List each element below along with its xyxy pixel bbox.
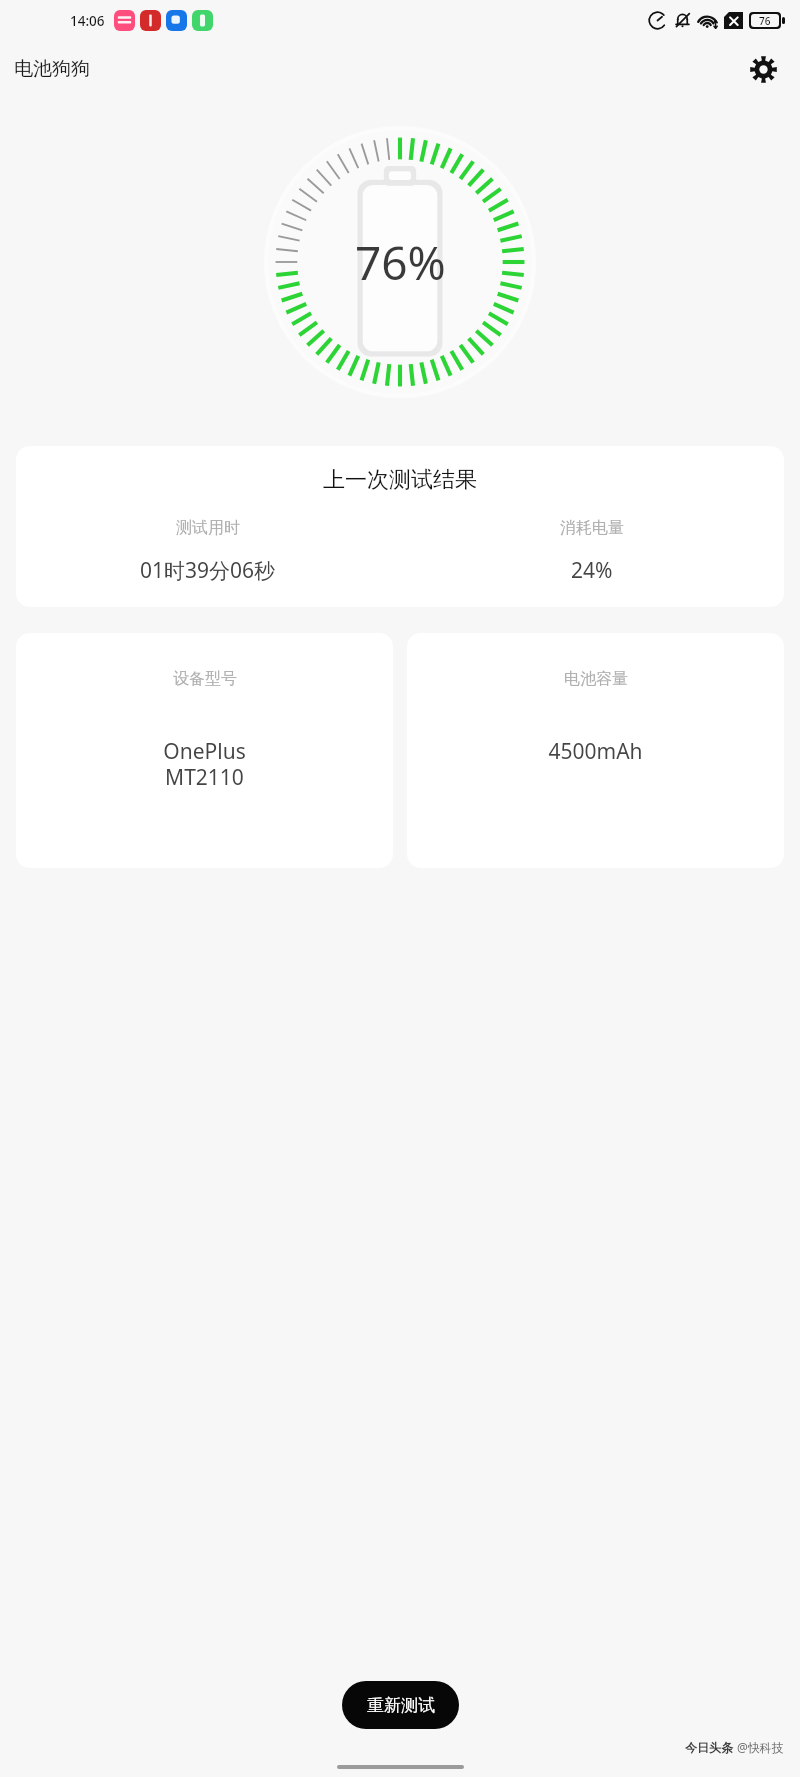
staticText: 14:06 — [70, 12, 105, 30]
staticText: 消耗电量 — [560, 518, 624, 538]
staticText: 01时39分06秒 — [140, 556, 276, 585]
staticText: 今日头条 — [685, 1740, 733, 1755]
staticText: 76 — [759, 14, 771, 27]
staticText: 4500mAh — [548, 737, 643, 766]
button[interactable]: 上一次测试结果 — [16, 446, 784, 607]
staticText: @快科技 — [737, 1739, 784, 1755]
staticText: 重新测试 — [367, 1695, 435, 1716]
staticText: 电池狗狗 — [14, 57, 90, 81]
staticText: 24% — [571, 556, 613, 585]
button[interactable]: Settings — [740, 46, 786, 92]
button[interactable]: 电池容量 — [407, 633, 784, 868]
staticText: 测试用时 — [176, 518, 240, 538]
button[interactable]: 重新测试 — [342, 1681, 459, 1729]
staticText: 上一次测试结果 — [16, 466, 784, 494]
button[interactable]: 设备型号 — [16, 633, 393, 868]
staticText: 电池容量 — [564, 669, 628, 689]
staticText: OnePlus MT2110 — [163, 737, 246, 792]
staticText: 76% — [355, 231, 446, 294]
staticText: 设备型号 — [173, 669, 237, 689]
